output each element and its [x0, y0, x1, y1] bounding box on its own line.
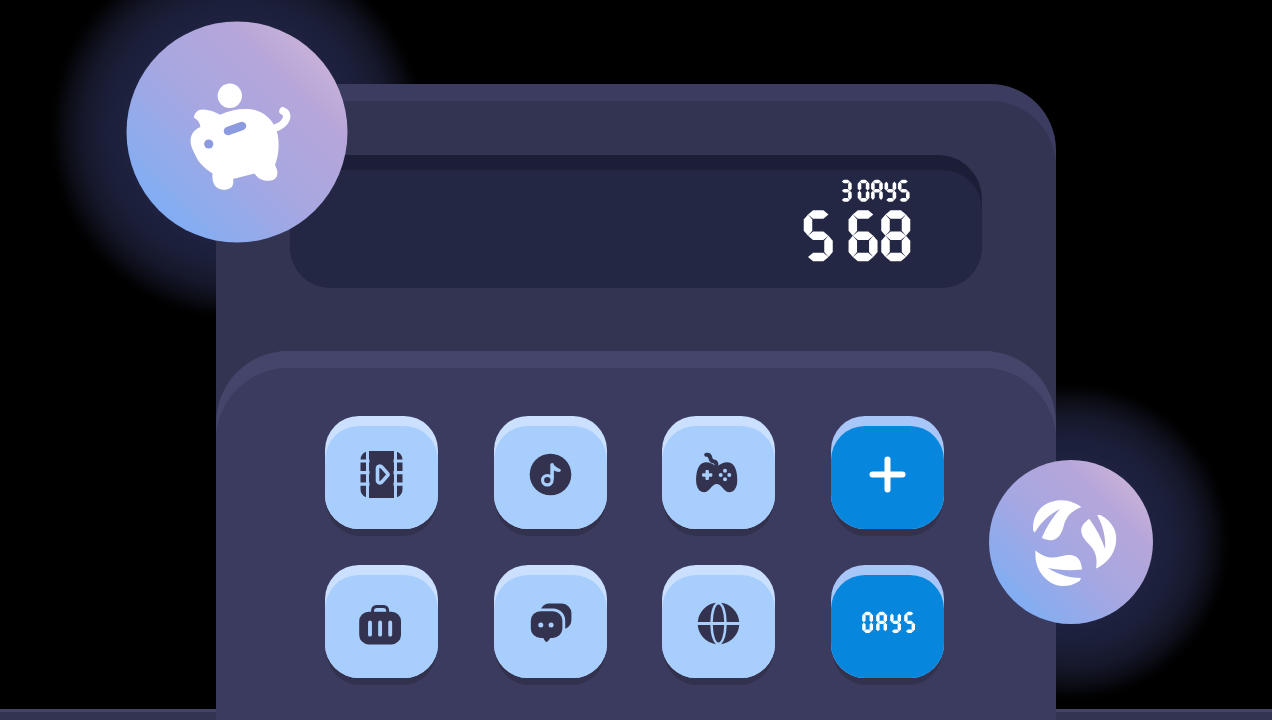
button[interactable]: Video: [325, 416, 438, 529]
button[interactable]: Countdown 5 68, 3 days: [290, 155, 982, 288]
button[interactable]: Eco mode: [989, 460, 1153, 624]
button[interactable]: Savings: [127, 22, 348, 243]
button[interactable]: Days counter: [831, 565, 944, 678]
button[interactable]: Browser: [662, 565, 775, 678]
button[interactable]: Work: [325, 565, 438, 678]
button[interactable]: Music: [494, 416, 607, 529]
button[interactable]: Games: [662, 416, 775, 529]
button[interactable]: Messages: [494, 565, 607, 678]
button[interactable]: Add app: [831, 416, 944, 529]
